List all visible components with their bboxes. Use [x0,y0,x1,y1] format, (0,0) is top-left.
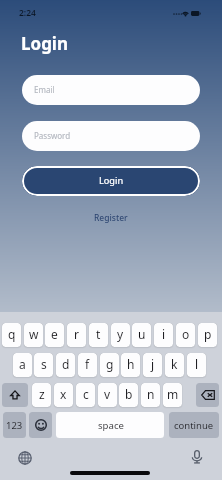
button[interactable]: o [176,323,195,347]
button[interactable]: g [100,353,119,377]
button[interactable]: Register [88,209,134,227]
button[interactable]: r [67,323,86,347]
staticText: continue [174,419,214,432]
button[interactable]: Voice input [189,449,205,465]
staticText: i [162,326,166,342]
button[interactable]: h [121,353,140,377]
staticText: r [74,326,79,342]
staticText: u [138,326,146,342]
button[interactable]: Shift [2,383,28,407]
button[interactable]: Password [22,121,200,151]
staticText: a [19,356,26,372]
button[interactable]: a [13,353,32,377]
button[interactable]: Email [22,75,200,105]
staticText: j [151,356,155,372]
button[interactable]: d [56,353,75,377]
button[interactable]: b [119,383,138,407]
button[interactable]: l [187,353,206,377]
staticText: 2:24 [19,7,36,19]
staticText: w [29,326,39,342]
button[interactable]: y [111,323,130,347]
staticText: y [117,326,124,342]
button[interactable]: f [78,353,97,377]
staticText: g [106,356,114,372]
button[interactable]: e [45,323,64,347]
button[interactable]: j [143,353,162,377]
staticText: v [104,386,111,402]
staticText: f [85,356,90,372]
staticText: s [41,356,47,372]
button[interactable]: Emoji [29,412,52,438]
staticText: e [51,326,58,342]
staticText: h [127,356,135,372]
button[interactable]: k [165,353,184,377]
staticText: d [62,356,70,372]
staticText: c [83,386,89,402]
button[interactable]: n [141,383,160,407]
button[interactable]: c [76,383,95,407]
button[interactable]: Change keyboard [17,450,33,466]
button[interactable]: w [24,323,43,347]
button[interactable]: m [163,383,182,407]
staticText: x [60,386,67,402]
staticText: k [171,356,178,372]
staticText: Email [34,84,55,95]
staticText: m [167,386,179,402]
button[interactable]: 123 [3,412,26,438]
button[interactable]: s [34,353,53,377]
button[interactable]: space [56,412,164,438]
staticText: o [182,326,190,342]
button[interactable]: x [54,383,73,407]
staticText: b [125,386,133,402]
staticText: Login [21,32,69,55]
button[interactable]: i [154,323,173,347]
button[interactable]: Backspace [196,383,219,407]
button[interactable]: p [198,323,217,347]
staticText: q [8,326,16,342]
button[interactable]: z [32,383,51,407]
staticText: l [195,356,199,372]
staticText: z [39,386,45,402]
button[interactable]: Login [22,166,200,196]
button[interactable]: u [132,323,151,347]
button[interactable]: t [89,323,108,347]
staticText: Password [34,130,71,141]
button[interactable]: q [2,323,21,347]
staticText: 123 [6,419,23,432]
staticText: p [204,326,212,342]
staticText: space [98,419,124,432]
button[interactable]: continue [169,412,219,438]
button[interactable]: v [98,383,117,407]
staticText: t [96,326,101,342]
staticText: n [147,386,155,402]
staticText: Login [99,174,124,187]
